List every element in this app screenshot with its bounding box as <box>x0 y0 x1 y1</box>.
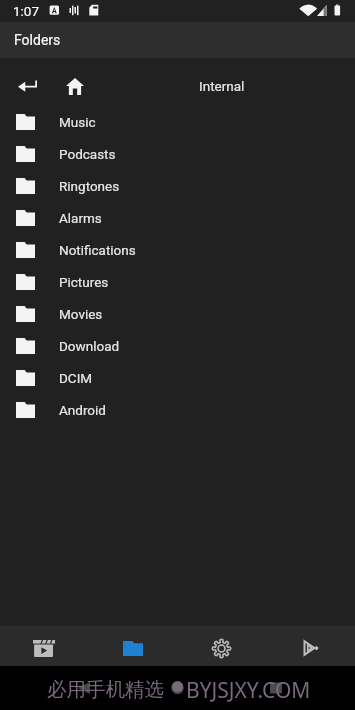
button[interactable]: Settings <box>177 630 266 666</box>
staticText: 必用手机精选 <box>47 677 164 702</box>
button[interactable]: Podcasts <box>0 138 355 170</box>
button[interactable]: Music <box>0 106 355 138</box>
staticText: Internal <box>199 78 245 94</box>
button[interactable]: Pictures <box>0 266 355 298</box>
button[interactable]: Android <box>0 394 355 426</box>
staticText: BYJSJXY.COM <box>186 676 311 705</box>
staticText: Notifications <box>59 242 136 258</box>
button[interactable]: Download <box>0 330 355 362</box>
button[interactable]: Ringtones <box>0 170 355 202</box>
button[interactable]: Player <box>266 630 355 666</box>
staticText: Music <box>59 114 96 130</box>
button[interactable]: DCIM <box>0 362 355 394</box>
button[interactable]: Folders <box>88 630 177 666</box>
button[interactable]: Alarms <box>0 202 355 234</box>
button[interactable]: Movies <box>0 630 88 666</box>
button[interactable]: Home <box>57 68 93 104</box>
staticText: Download <box>59 338 120 354</box>
staticText: Pictures <box>59 274 109 290</box>
staticText: Android <box>59 402 106 418</box>
staticText: Folders <box>14 32 61 48</box>
staticText: Alarms <box>59 210 102 226</box>
staticText: 1:07 <box>13 3 40 19</box>
staticText: Movies <box>59 306 103 322</box>
staticText: DCIM <box>59 370 93 386</box>
button[interactable]: Back <box>9 68 45 104</box>
button[interactable]: Movies <box>0 298 355 330</box>
staticText: Podcasts <box>59 146 116 162</box>
button[interactable]: Notifications <box>0 234 355 266</box>
staticText: Ringtones <box>59 178 120 194</box>
